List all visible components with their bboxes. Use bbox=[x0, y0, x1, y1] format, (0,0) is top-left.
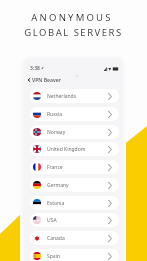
button[interactable]: Estonia bbox=[30, 196, 119, 210]
staticText: ANONYMOUS bbox=[31, 11, 113, 24]
staticText: Germany bbox=[47, 182, 69, 189]
button[interactable]: Netherlands bbox=[30, 89, 119, 103]
staticText: VPN Beaver bbox=[32, 76, 61, 83]
staticText: Spain bbox=[47, 253, 61, 260]
staticText: USA bbox=[47, 217, 57, 224]
staticText: Netherlands bbox=[47, 93, 77, 100]
button[interactable]: France bbox=[30, 160, 119, 174]
button[interactable]: Spain bbox=[30, 249, 119, 261]
button[interactable]: USA bbox=[30, 213, 119, 227]
staticText: Canada bbox=[47, 235, 65, 242]
button[interactable]: Back bbox=[25, 76, 32, 83]
staticText: 3:38 bbox=[30, 65, 40, 72]
button[interactable]: Canada bbox=[30, 231, 119, 245]
button[interactable]: Germany bbox=[30, 178, 119, 192]
staticText: GLOBAL SERVERS bbox=[24, 26, 123, 39]
staticText: United Kingdom bbox=[47, 146, 86, 153]
staticText: France bbox=[47, 164, 63, 171]
staticText: Norway bbox=[47, 129, 66, 136]
button[interactable]: Norway bbox=[30, 125, 119, 139]
button[interactable]: United Kingdom bbox=[30, 142, 119, 156]
staticText: Estonia bbox=[47, 200, 65, 207]
button[interactable]: Russia bbox=[30, 107, 119, 121]
staticText: Russia bbox=[47, 111, 63, 118]
